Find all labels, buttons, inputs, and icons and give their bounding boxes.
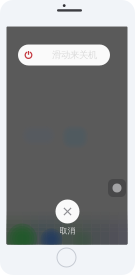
staticText: 滑动来关机 bbox=[52, 49, 97, 61]
button[interactable]: 取消 bbox=[49, 199, 85, 236]
button[interactable]: 滑动来关机 bbox=[18, 44, 110, 65]
staticText: 取消 bbox=[59, 226, 75, 236]
button[interactable]: AssistiveTouch bbox=[108, 179, 126, 197]
